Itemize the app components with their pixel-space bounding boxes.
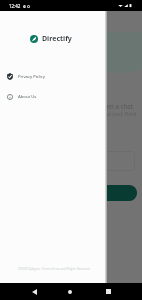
button[interactable]: Back: [24, 283, 44, 300]
button[interactable]: [14, 151, 135, 171]
staticText: 12:42: [9, 3, 21, 9]
staticText: About Us: [18, 93, 37, 99]
button[interactable]: [14, 185, 137, 201]
staticText: Privacy Policy: [18, 73, 45, 79]
button[interactable]: About Us: [0, 86, 107, 106]
staticText: Write down your message to open a chat.: [14, 102, 138, 110]
button[interactable]: Recent apps: [98, 283, 118, 300]
staticText: You can type your text in the below text…: [14, 110, 138, 118]
staticText: ©2020 Optigon · Terms of use and Rights …: [18, 267, 90, 271]
button[interactable]: Home: [60, 283, 80, 300]
staticText: Directify: [42, 34, 72, 44]
button[interactable]: Privacy Policy: [0, 66, 107, 86]
